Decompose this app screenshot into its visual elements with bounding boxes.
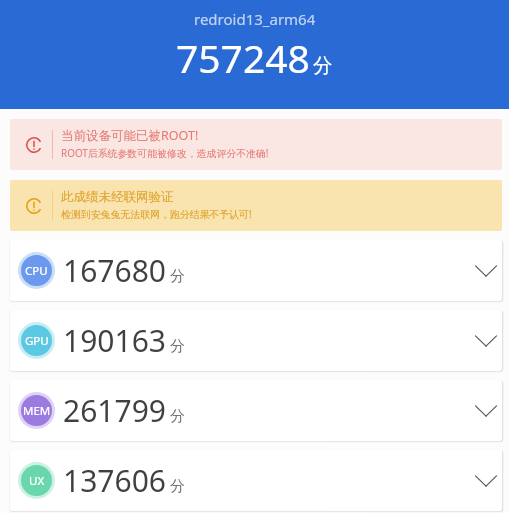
other: Warning <box>26 137 42 153</box>
staticText: 分 <box>170 477 185 496</box>
button[interactable]: Expand GPU details <box>469 310 502 371</box>
staticText: 757248 <box>176 31 310 84</box>
staticText: ROOT后系统参数可能被修改，造成评分不准确! <box>61 146 269 160</box>
button[interactable]: GPU <box>10 310 502 371</box>
staticText: 检测到安兔兔无法联网，跑分结果不予认可! <box>61 207 252 221</box>
staticText: 当前设备可能已被ROOT! <box>61 127 199 144</box>
staticText: 分 <box>313 53 333 78</box>
button[interactable]: MEM <box>10 380 502 441</box>
staticText: 137606 <box>63 460 166 501</box>
staticText: CPU <box>25 263 48 279</box>
staticText: 167680 <box>63 250 166 291</box>
staticText: 分 <box>170 337 185 356</box>
button[interactable]: Expand MEM details <box>469 380 502 441</box>
staticText: 分 <box>170 267 185 286</box>
button[interactable]: Expand CPU details <box>469 240 502 301</box>
button[interactable]: UX <box>10 450 502 511</box>
staticText: 此成绩未经联网验证 <box>61 189 174 205</box>
staticText: 分 <box>170 407 185 426</box>
other: Warning <box>26 198 42 214</box>
staticText: UX <box>29 473 45 489</box>
button[interactable]: Warning <box>10 180 502 231</box>
staticText: GPU <box>25 333 49 349</box>
button[interactable]: Expand UX details <box>469 450 502 511</box>
staticText: MEM <box>23 403 51 419</box>
staticText: 261799 <box>63 390 166 431</box>
button[interactable]: CPU <box>10 240 502 301</box>
staticText: redroid13_arm64 <box>194 9 316 29</box>
staticText: 190163 <box>63 320 166 361</box>
button[interactable]: Warning <box>10 119 502 170</box>
